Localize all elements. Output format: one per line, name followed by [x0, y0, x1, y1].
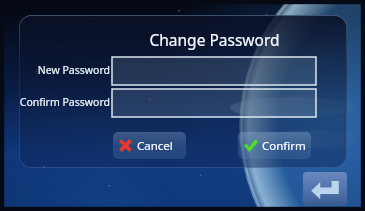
button[interactable]: Cancel: [113, 132, 186, 159]
button[interactable]: New Password input: [112, 57, 316, 85]
staticText: Confirm: [262, 138, 306, 154]
button[interactable]: Back: [303, 172, 347, 206]
button[interactable]: Confirm Password input: [112, 89, 316, 117]
staticText: Cancel: [137, 138, 173, 154]
staticText: New Password: [37, 63, 110, 77]
button[interactable]: Confirm: [238, 132, 311, 159]
staticText: Change Password: [149, 29, 280, 50]
staticText: Confirm Password: [19, 95, 110, 109]
